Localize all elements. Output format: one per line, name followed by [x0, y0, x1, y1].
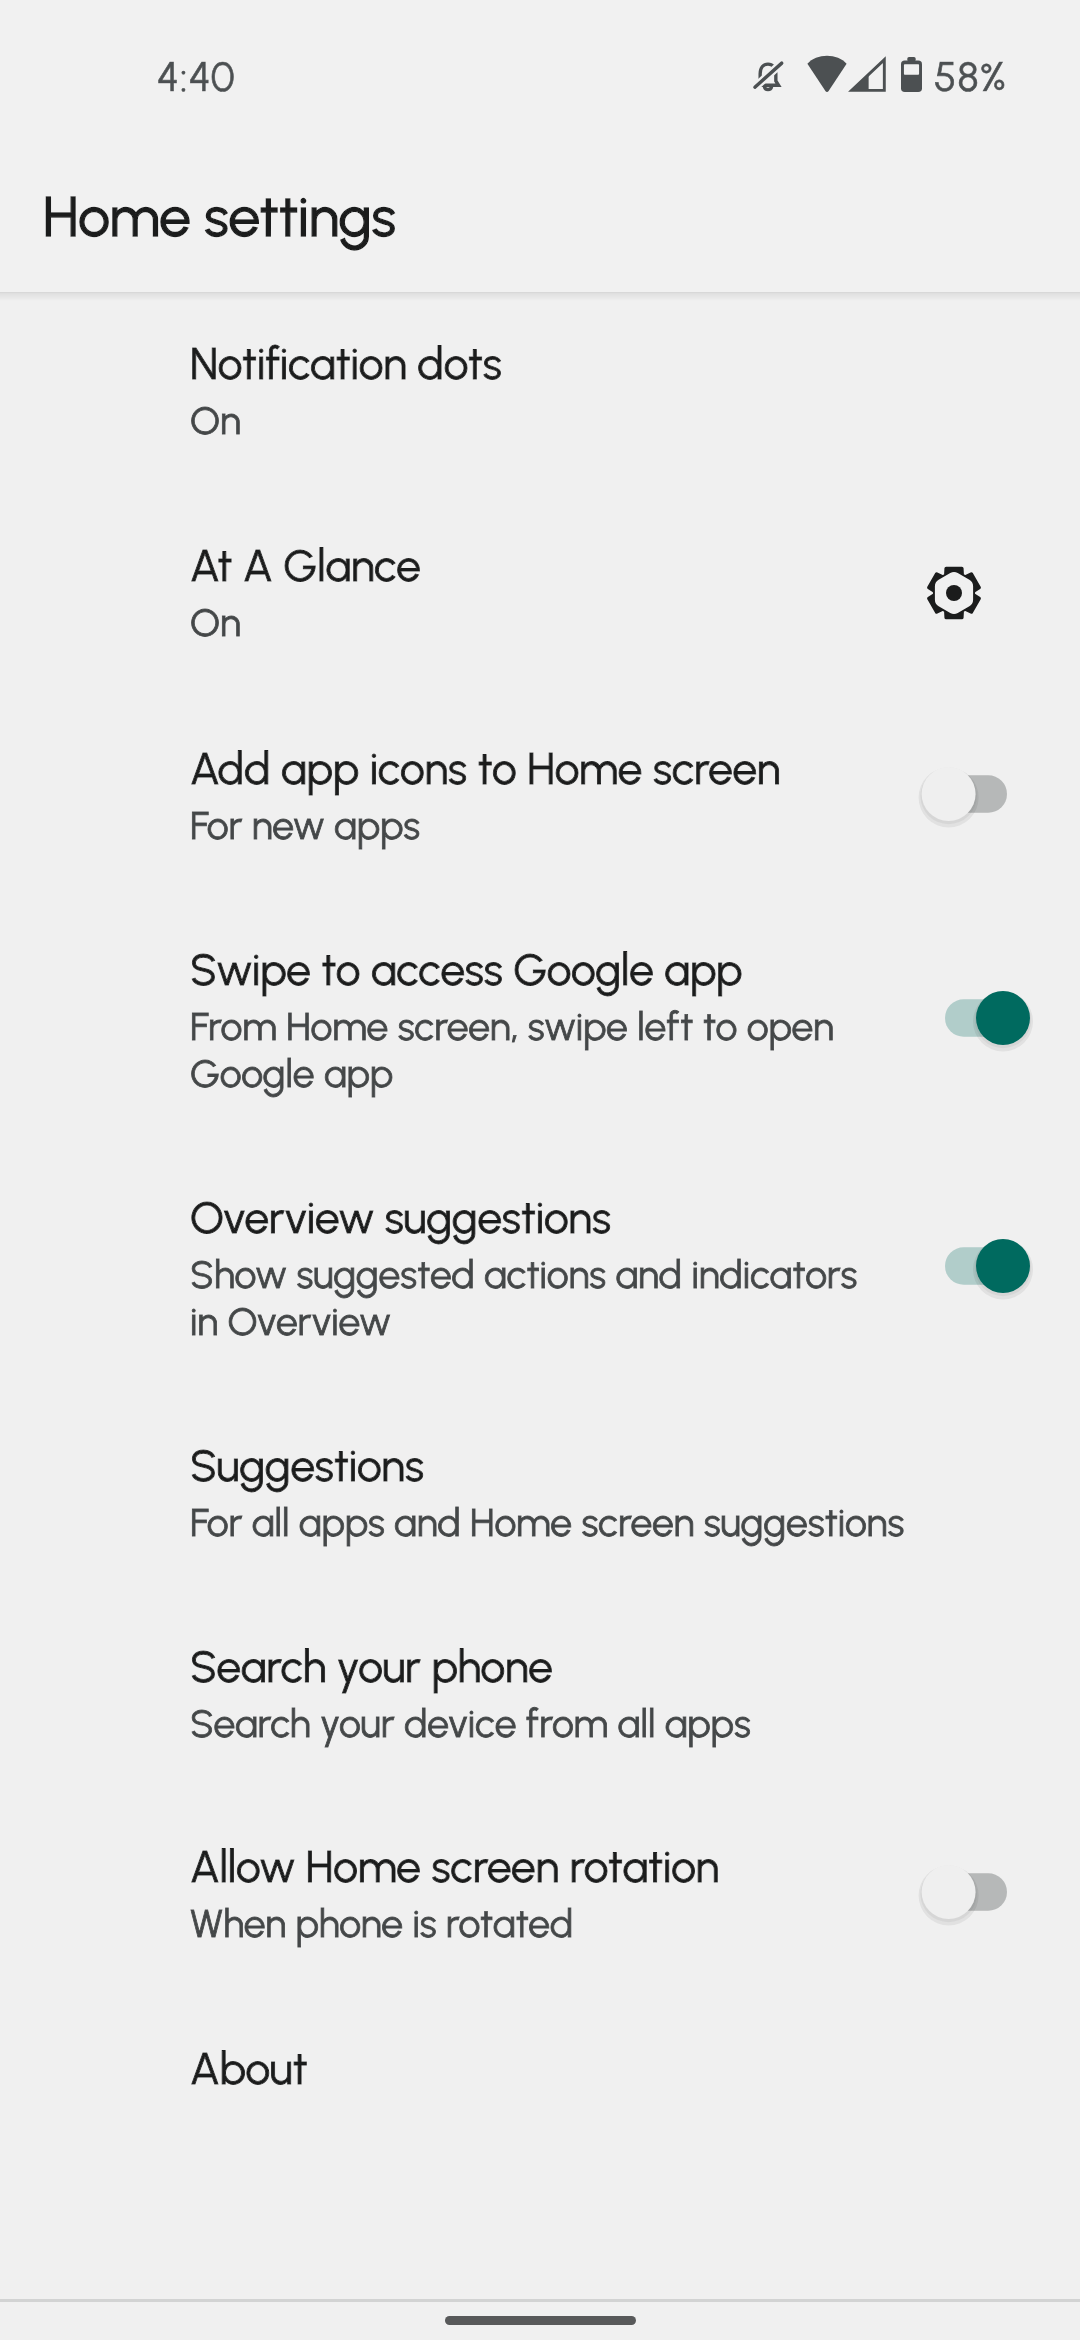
staticText: 58%: [934, 53, 1008, 101]
staticText: Swipe to access Google app: [190, 941, 743, 997]
staticText: Allow Home screen rotation: [190, 1838, 720, 1894]
staticText: On: [190, 599, 241, 646]
staticText: For all apps and Home screen suggestions: [190, 1499, 905, 1546]
staticText: Search your device from all apps: [190, 1700, 751, 1747]
staticText: When phone is rotated: [190, 1900, 574, 1947]
staticText: Home settings: [43, 184, 396, 250]
staticText: Allow Home screen rotation: [190, 1838, 720, 1894]
staticText: Home settings: [43, 184, 396, 250]
staticText: From Home screen, swipe left to open Goo…: [190, 1003, 835, 1097]
button[interactable]: Toggle off: [900, 1841, 1080, 1951]
button[interactable]: Swipe to access Google app: [0, 898, 1080, 1146]
button[interactable]: Toggle on: [900, 967, 1080, 1077]
staticText: Notification dots: [190, 335, 502, 391]
staticText: From Home screen, swipe left to open Goo…: [190, 1003, 835, 1097]
button[interactable]: About: [0, 1997, 1080, 2198]
staticText: Add app icons to Home screen: [190, 740, 781, 796]
staticText: At A Glance: [190, 537, 421, 593]
staticText: For new apps: [190, 802, 420, 849]
button[interactable]: Overview suggestions: [0, 1146, 1080, 1394]
button[interactable]: Suggestions: [0, 1394, 1080, 1595]
staticText: Suggestions: [190, 1437, 424, 1493]
staticText: 58%: [934, 53, 1008, 101]
staticText: About: [190, 2040, 308, 2096]
button[interactable]: At A Glance settings: [900, 539, 1008, 647]
staticText: For new apps: [190, 802, 420, 849]
staticText: 4:40: [157, 53, 237, 101]
staticText: On: [190, 397, 241, 444]
button[interactable]: Toggle off: [900, 743, 1080, 853]
button[interactable]: At A Glance: [0, 494, 1080, 697]
staticText: Search your phone: [190, 1638, 553, 1694]
staticText: Swipe to access Google app: [190, 941, 743, 997]
staticText: Search your phone: [190, 1638, 553, 1694]
staticText: About: [190, 2040, 308, 2096]
staticText: On: [190, 599, 241, 646]
staticText: At A Glance: [190, 537, 421, 593]
staticText: Show suggested actions and indicators in…: [190, 1251, 858, 1345]
button[interactable]: Notification dots: [0, 292, 1080, 494]
button[interactable]: Toggle on: [900, 1215, 1080, 1325]
button[interactable]: Search your phone: [0, 1595, 1080, 1795]
staticText: Show suggested actions and indicators in…: [190, 1251, 858, 1345]
staticText: Search your device from all apps: [190, 1700, 751, 1747]
staticText: Overview suggestions: [190, 1189, 611, 1245]
button[interactable]: Allow Home screen rotation: [0, 1795, 1080, 1997]
staticText: Add app icons to Home screen: [190, 740, 781, 796]
button[interactable]: Add app icons to Home screen: [0, 697, 1080, 898]
staticText: On: [190, 397, 241, 444]
staticText: Overview suggestions: [190, 1189, 611, 1245]
staticText: Notification dots: [190, 335, 502, 391]
staticText: For all apps and Home screen suggestions: [190, 1499, 905, 1546]
staticText: Suggestions: [190, 1437, 424, 1493]
staticText: 4:40: [157, 53, 237, 101]
staticText: When phone is rotated: [190, 1900, 574, 1947]
